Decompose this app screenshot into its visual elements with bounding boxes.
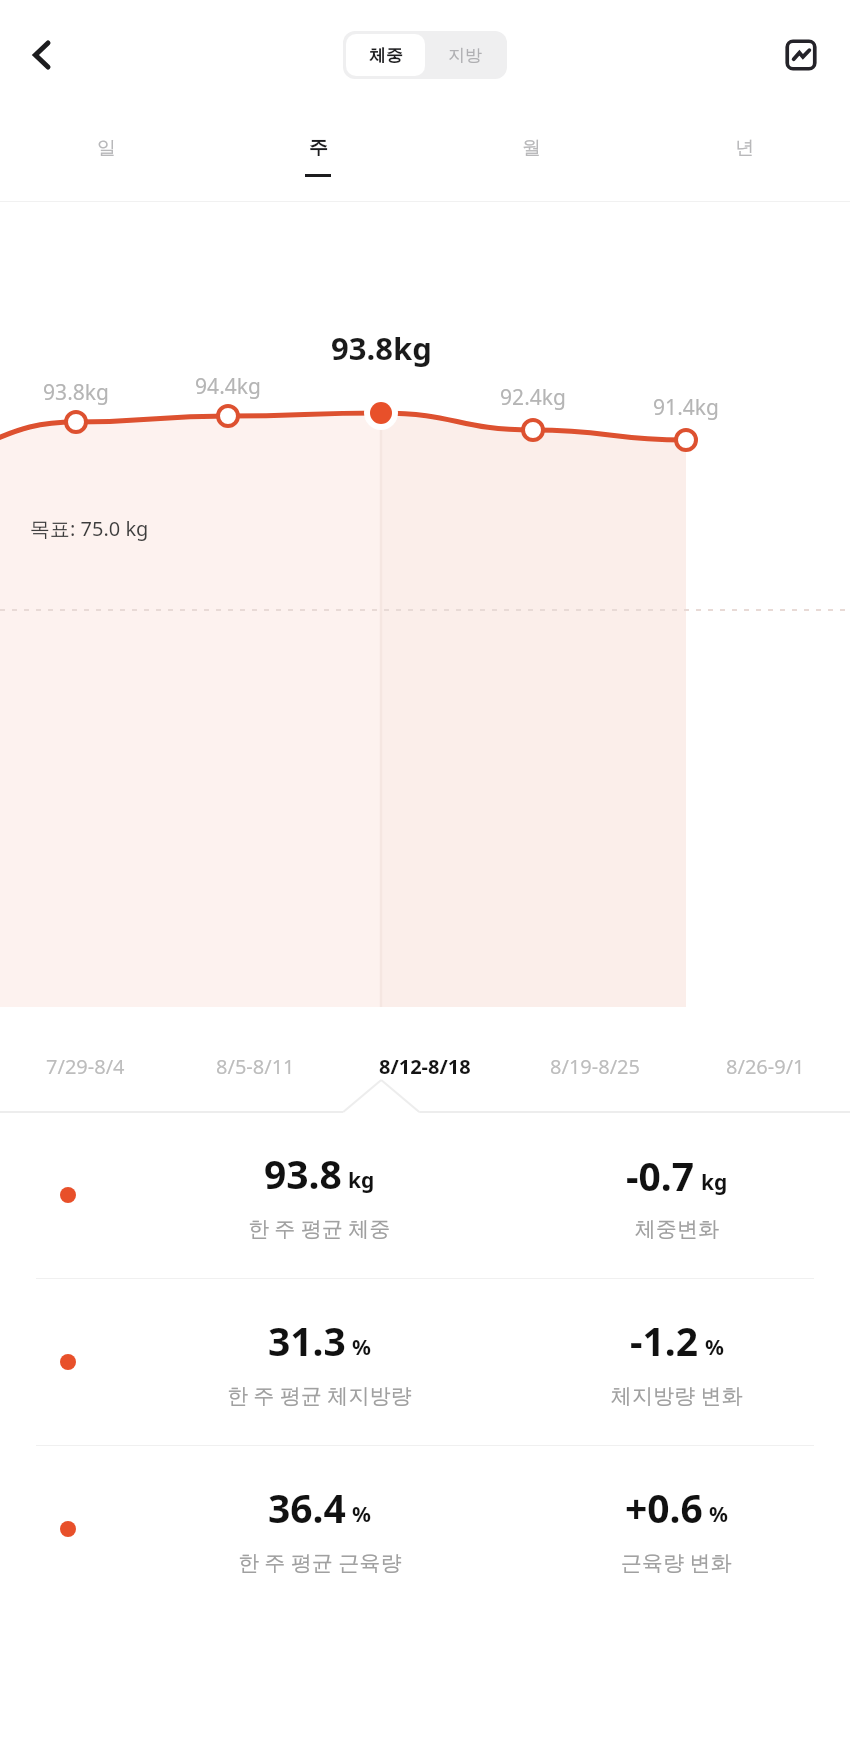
staticText: -0.7	[626, 1149, 695, 1202]
staticText: 36.4	[268, 1481, 346, 1534]
staticText: 91.4kg	[653, 393, 719, 422]
staticText: 7/29-8/4	[46, 1053, 125, 1080]
button[interactable]: 8/19-8/25	[510, 1020, 680, 1112]
staticText: 한 주 평균 근육량	[238, 1548, 402, 1577]
staticText: %	[709, 1500, 728, 1529]
staticText: 목표: 75.0 kg	[30, 515, 149, 542]
button[interactable]: Back	[12, 25, 72, 85]
staticText: +0.6	[625, 1481, 703, 1534]
button[interactable]: 체중	[346, 34, 425, 76]
staticText: 일	[97, 136, 116, 160]
staticText: 주	[309, 136, 328, 160]
staticText: -1.2	[630, 1314, 699, 1367]
staticText: 한 주 평균 체지방량	[227, 1381, 412, 1410]
staticText: 지방	[448, 45, 482, 66]
button[interactable]: 지방	[425, 34, 504, 76]
staticText: %	[705, 1333, 724, 1362]
staticText: 체지방량 변화	[611, 1381, 743, 1410]
staticText: %	[352, 1333, 371, 1362]
staticText: 93.8	[264, 1147, 342, 1200]
staticText: 92.4kg	[500, 383, 566, 412]
staticText: 93.8kg	[43, 378, 109, 407]
button[interactable]: Chart view	[774, 28, 828, 82]
staticText: 월	[522, 136, 541, 160]
staticText: 한 주 평균 체중	[248, 1214, 391, 1243]
button[interactable]: 36.4	[0, 1446, 850, 1612]
button[interactable]: 93.8	[0, 1112, 850, 1278]
staticText: 93.8kg	[331, 327, 432, 369]
staticText: kg	[701, 1168, 728, 1197]
button[interactable]: 8/5-8/11	[170, 1020, 340, 1112]
staticText: 8/5-8/11	[216, 1053, 295, 1080]
button[interactable]: 주	[212, 110, 424, 202]
staticText: 8/26-9/1	[726, 1053, 805, 1080]
staticText: 31.3	[268, 1314, 346, 1367]
button[interactable]: 월	[424, 110, 637, 202]
button[interactable]: 31.3	[0, 1279, 850, 1445]
button[interactable]: 일	[0, 110, 212, 202]
staticText: 년	[735, 136, 754, 160]
staticText: 근육량 변화	[621, 1548, 732, 1577]
staticText: 8/12-8/18	[379, 1053, 471, 1080]
staticText: 8/19-8/25	[550, 1053, 640, 1080]
button[interactable]: 7/29-8/4	[0, 1020, 170, 1112]
staticText: kg	[348, 1166, 375, 1195]
button[interactable]: 년	[637, 110, 850, 202]
staticText: 94.4kg	[195, 372, 261, 401]
staticText: 체중변화	[635, 1216, 719, 1242]
staticText: 체중	[369, 45, 403, 66]
button[interactable]: 93.8kg	[283, 319, 479, 377]
staticText: %	[352, 1500, 371, 1529]
button[interactable]: 8/12-8/18	[340, 1020, 510, 1112]
button[interactable]: 8/26-9/1	[680, 1020, 850, 1112]
